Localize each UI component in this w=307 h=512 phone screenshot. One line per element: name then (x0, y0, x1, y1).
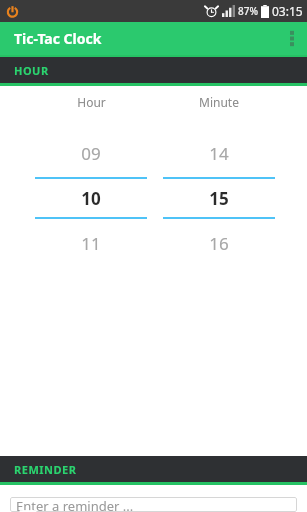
button[interactable]: 10 (35, 179, 147, 217)
button[interactable]: 09 (35, 136, 147, 170)
button[interactable]: 11 (35, 226, 147, 260)
staticText: 15 (209, 187, 229, 210)
button[interactable]: 16 (163, 226, 275, 260)
staticText: HOUR (14, 63, 49, 78)
staticText: 10 (81, 187, 101, 210)
staticText: Minute (199, 94, 239, 110)
button[interactable]: 15 (163, 179, 275, 217)
staticText: Tic-Tac Clock (14, 29, 102, 48)
button[interactable]: Enter a reminder ... (10, 497, 297, 512)
button[interactable]: More options (277, 22, 307, 55)
staticText: 14 (209, 142, 229, 165)
staticText: REMINDER (14, 462, 77, 477)
staticText: Enter a reminder ... (16, 497, 134, 512)
staticText: 03:15 (272, 3, 303, 19)
staticText: 09 (81, 142, 101, 165)
button[interactable]: 14 (163, 136, 275, 170)
staticText: 87% (238, 4, 258, 18)
staticText: 11 (81, 232, 101, 255)
staticText: 16 (209, 232, 229, 255)
staticText: Hour (77, 94, 106, 110)
